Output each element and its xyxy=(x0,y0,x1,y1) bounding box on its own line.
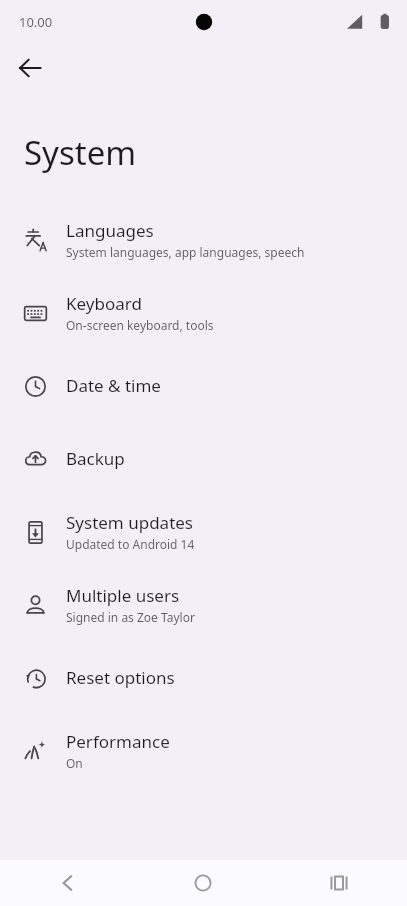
button[interactable]: Keyboard xyxy=(0,276,407,349)
staticText: Keyboard xyxy=(66,292,142,315)
button[interactable]: Back xyxy=(6,44,54,92)
staticText: System languages, app languages, speech xyxy=(66,244,305,260)
staticText: System xyxy=(24,130,137,175)
button[interactable]: Multiple users xyxy=(0,568,407,641)
staticText: On-screen keyboard, tools xyxy=(66,317,214,333)
staticText: System updates xyxy=(66,511,194,534)
button[interactable]: Date & time xyxy=(0,349,407,422)
staticText: Backup xyxy=(66,447,125,470)
staticText: 10.00 xyxy=(19,13,53,31)
button[interactable]: Home xyxy=(135,860,271,906)
button[interactable]: Back xyxy=(0,860,135,906)
button[interactable]: Backup xyxy=(0,422,407,495)
staticText: Performance xyxy=(66,730,170,753)
button[interactable]: System updates xyxy=(0,495,407,568)
button[interactable]: Recent apps xyxy=(271,860,407,906)
button[interactable]: Reset options xyxy=(0,641,407,714)
staticText: On xyxy=(66,755,83,771)
staticText: Reset options xyxy=(66,666,175,689)
staticText: Multiple users xyxy=(66,584,180,607)
staticText: Signed in as Zoe Taylor xyxy=(66,609,195,625)
staticText: Updated to Android 14 xyxy=(66,536,195,552)
button[interactable]: Performance xyxy=(0,714,407,787)
staticText: Date & time xyxy=(66,374,161,397)
staticText: Languages xyxy=(66,219,154,242)
button[interactable]: Languages xyxy=(0,203,407,276)
